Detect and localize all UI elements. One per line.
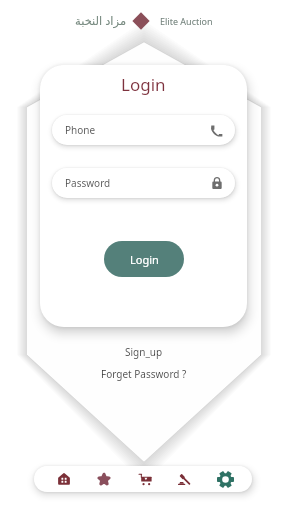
staticText: Login <box>130 252 159 267</box>
button[interactable]: Settings <box>214 468 236 490</box>
button[interactable]: Home <box>53 468 75 490</box>
button[interactable]: Forget Password ? <box>0 365 288 383</box>
button[interactable]: Auctions <box>173 468 195 490</box>
staticText: Elite Auction <box>160 15 213 27</box>
staticText: مزاد النخبة <box>75 13 127 29</box>
staticText: Forget Password ? <box>101 367 187 381</box>
staticText: Password <box>65 176 111 190</box>
staticText: Phone <box>65 123 96 137</box>
button[interactable]: Favourites <box>93 468 115 490</box>
button[interactable]: Login <box>104 241 184 277</box>
button[interactable]: Password <box>52 168 235 198</box>
button[interactable]: Cart <box>134 468 156 490</box>
staticText: Sign_up <box>125 345 163 359</box>
button[interactable]: Phone <box>52 115 235 145</box>
staticText: Login <box>121 73 166 96</box>
button[interactable]: Sign_up <box>0 343 288 361</box>
